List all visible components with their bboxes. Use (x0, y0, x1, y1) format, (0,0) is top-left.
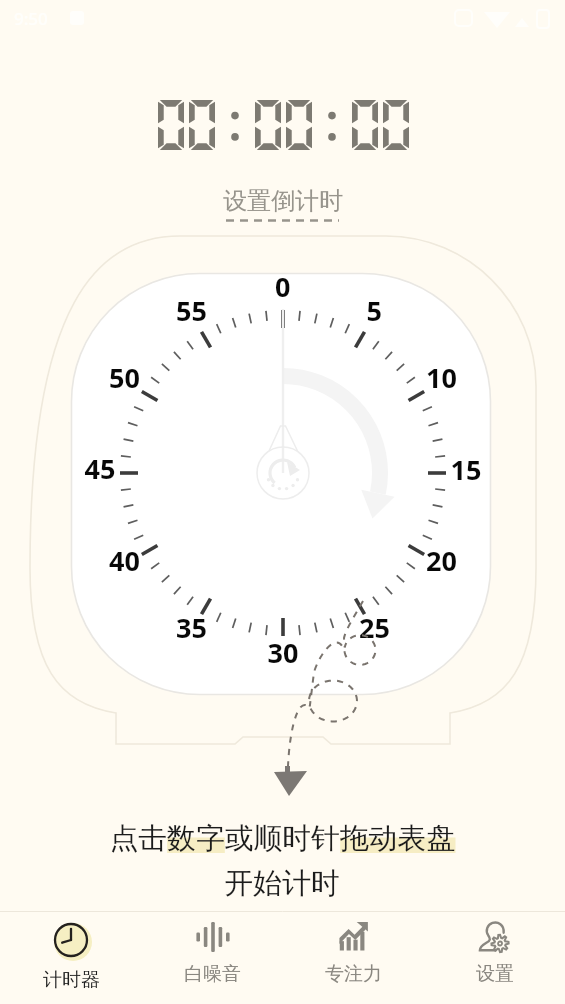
staticText: 白噪音 (184, 962, 241, 986)
staticText: 设置 (476, 962, 514, 986)
staticText: 专注力 (325, 962, 382, 986)
staticText: 计时器 (43, 968, 100, 992)
button[interactable]: Settings (424, 912, 565, 1004)
staticText: 设置倒计时 (223, 186, 343, 216)
button[interactable]: Focus (283, 912, 424, 1004)
button[interactable]: White noise (142, 912, 283, 1004)
button[interactable]: Timer (0, 912, 142, 1004)
